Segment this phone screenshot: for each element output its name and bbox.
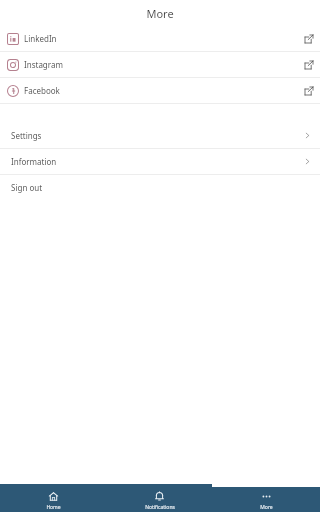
button[interactable]: LinkedIn [0, 26, 320, 51]
button[interactable]: Notifications [106, 488, 213, 511]
staticText: Instagram [24, 59, 63, 70]
button[interactable]: Facebook [0, 78, 320, 103]
staticText: Settings [11, 130, 42, 141]
staticText: Facebook [24, 85, 60, 96]
other: Open Facebook [304, 86, 314, 96]
button[interactable]: Instagram [0, 52, 320, 77]
staticText: Notifications [145, 504, 175, 511]
other: Open Instagram [304, 60, 314, 70]
other: Open LinkedIn [304, 34, 314, 44]
staticText: Home [46, 504, 61, 511]
button[interactable]: Settings [0, 123, 320, 148]
staticText: LinkedIn [24, 33, 57, 44]
staticText: More [260, 504, 273, 511]
staticText: Sign out [11, 182, 43, 193]
button[interactable]: Sign out [0, 175, 320, 200]
staticText: Information [11, 156, 57, 167]
staticText: More [146, 6, 174, 21]
button[interactable]: More [213, 488, 320, 511]
button[interactable]: Information [0, 149, 320, 174]
button[interactable]: Home [0, 488, 106, 511]
